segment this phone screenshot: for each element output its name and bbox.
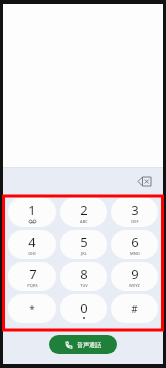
button[interactable]: 3: [111, 197, 158, 227]
staticText: MNO: [130, 251, 140, 256]
staticText: WXYZ: [129, 283, 140, 288]
staticText: TUV: [80, 283, 88, 288]
staticText: 8: [80, 265, 88, 283]
button[interactable]: 7: [8, 262, 56, 291]
button[interactable]: *: [8, 294, 56, 323]
button[interactable]: 音声通話: [49, 335, 117, 354]
button[interactable]: 5: [60, 230, 107, 259]
staticText: 4: [28, 233, 36, 251]
staticText: 7: [29, 265, 37, 283]
staticText: 2: [80, 201, 88, 219]
button[interactable]: 0: [60, 294, 107, 323]
staticText: 0: [80, 299, 88, 317]
button[interactable]: 6: [111, 230, 158, 259]
button[interactable]: 2: [60, 197, 107, 227]
staticText: 音声通話: [77, 341, 101, 349]
staticText: 1: [28, 201, 36, 219]
staticText: 6: [131, 233, 139, 251]
staticText: PQRS: [27, 283, 38, 288]
button[interactable]: 9: [111, 262, 158, 291]
staticText: *: [29, 302, 35, 316]
button[interactable]: 1: [8, 197, 56, 227]
staticText: ABC: [80, 219, 88, 224]
staticText: 3: [131, 201, 139, 219]
staticText: 5: [80, 233, 88, 251]
button[interactable]: 4: [8, 230, 56, 259]
staticText: DEF: [131, 219, 139, 224]
button[interactable]: Backspace: [133, 172, 155, 190]
staticText: 9: [131, 265, 139, 283]
staticText: GHI: [28, 251, 36, 256]
staticText: JKL: [81, 251, 87, 256]
button[interactable]: 8: [60, 262, 107, 291]
button[interactable]: #: [111, 294, 158, 323]
staticText: #: [131, 302, 138, 316]
